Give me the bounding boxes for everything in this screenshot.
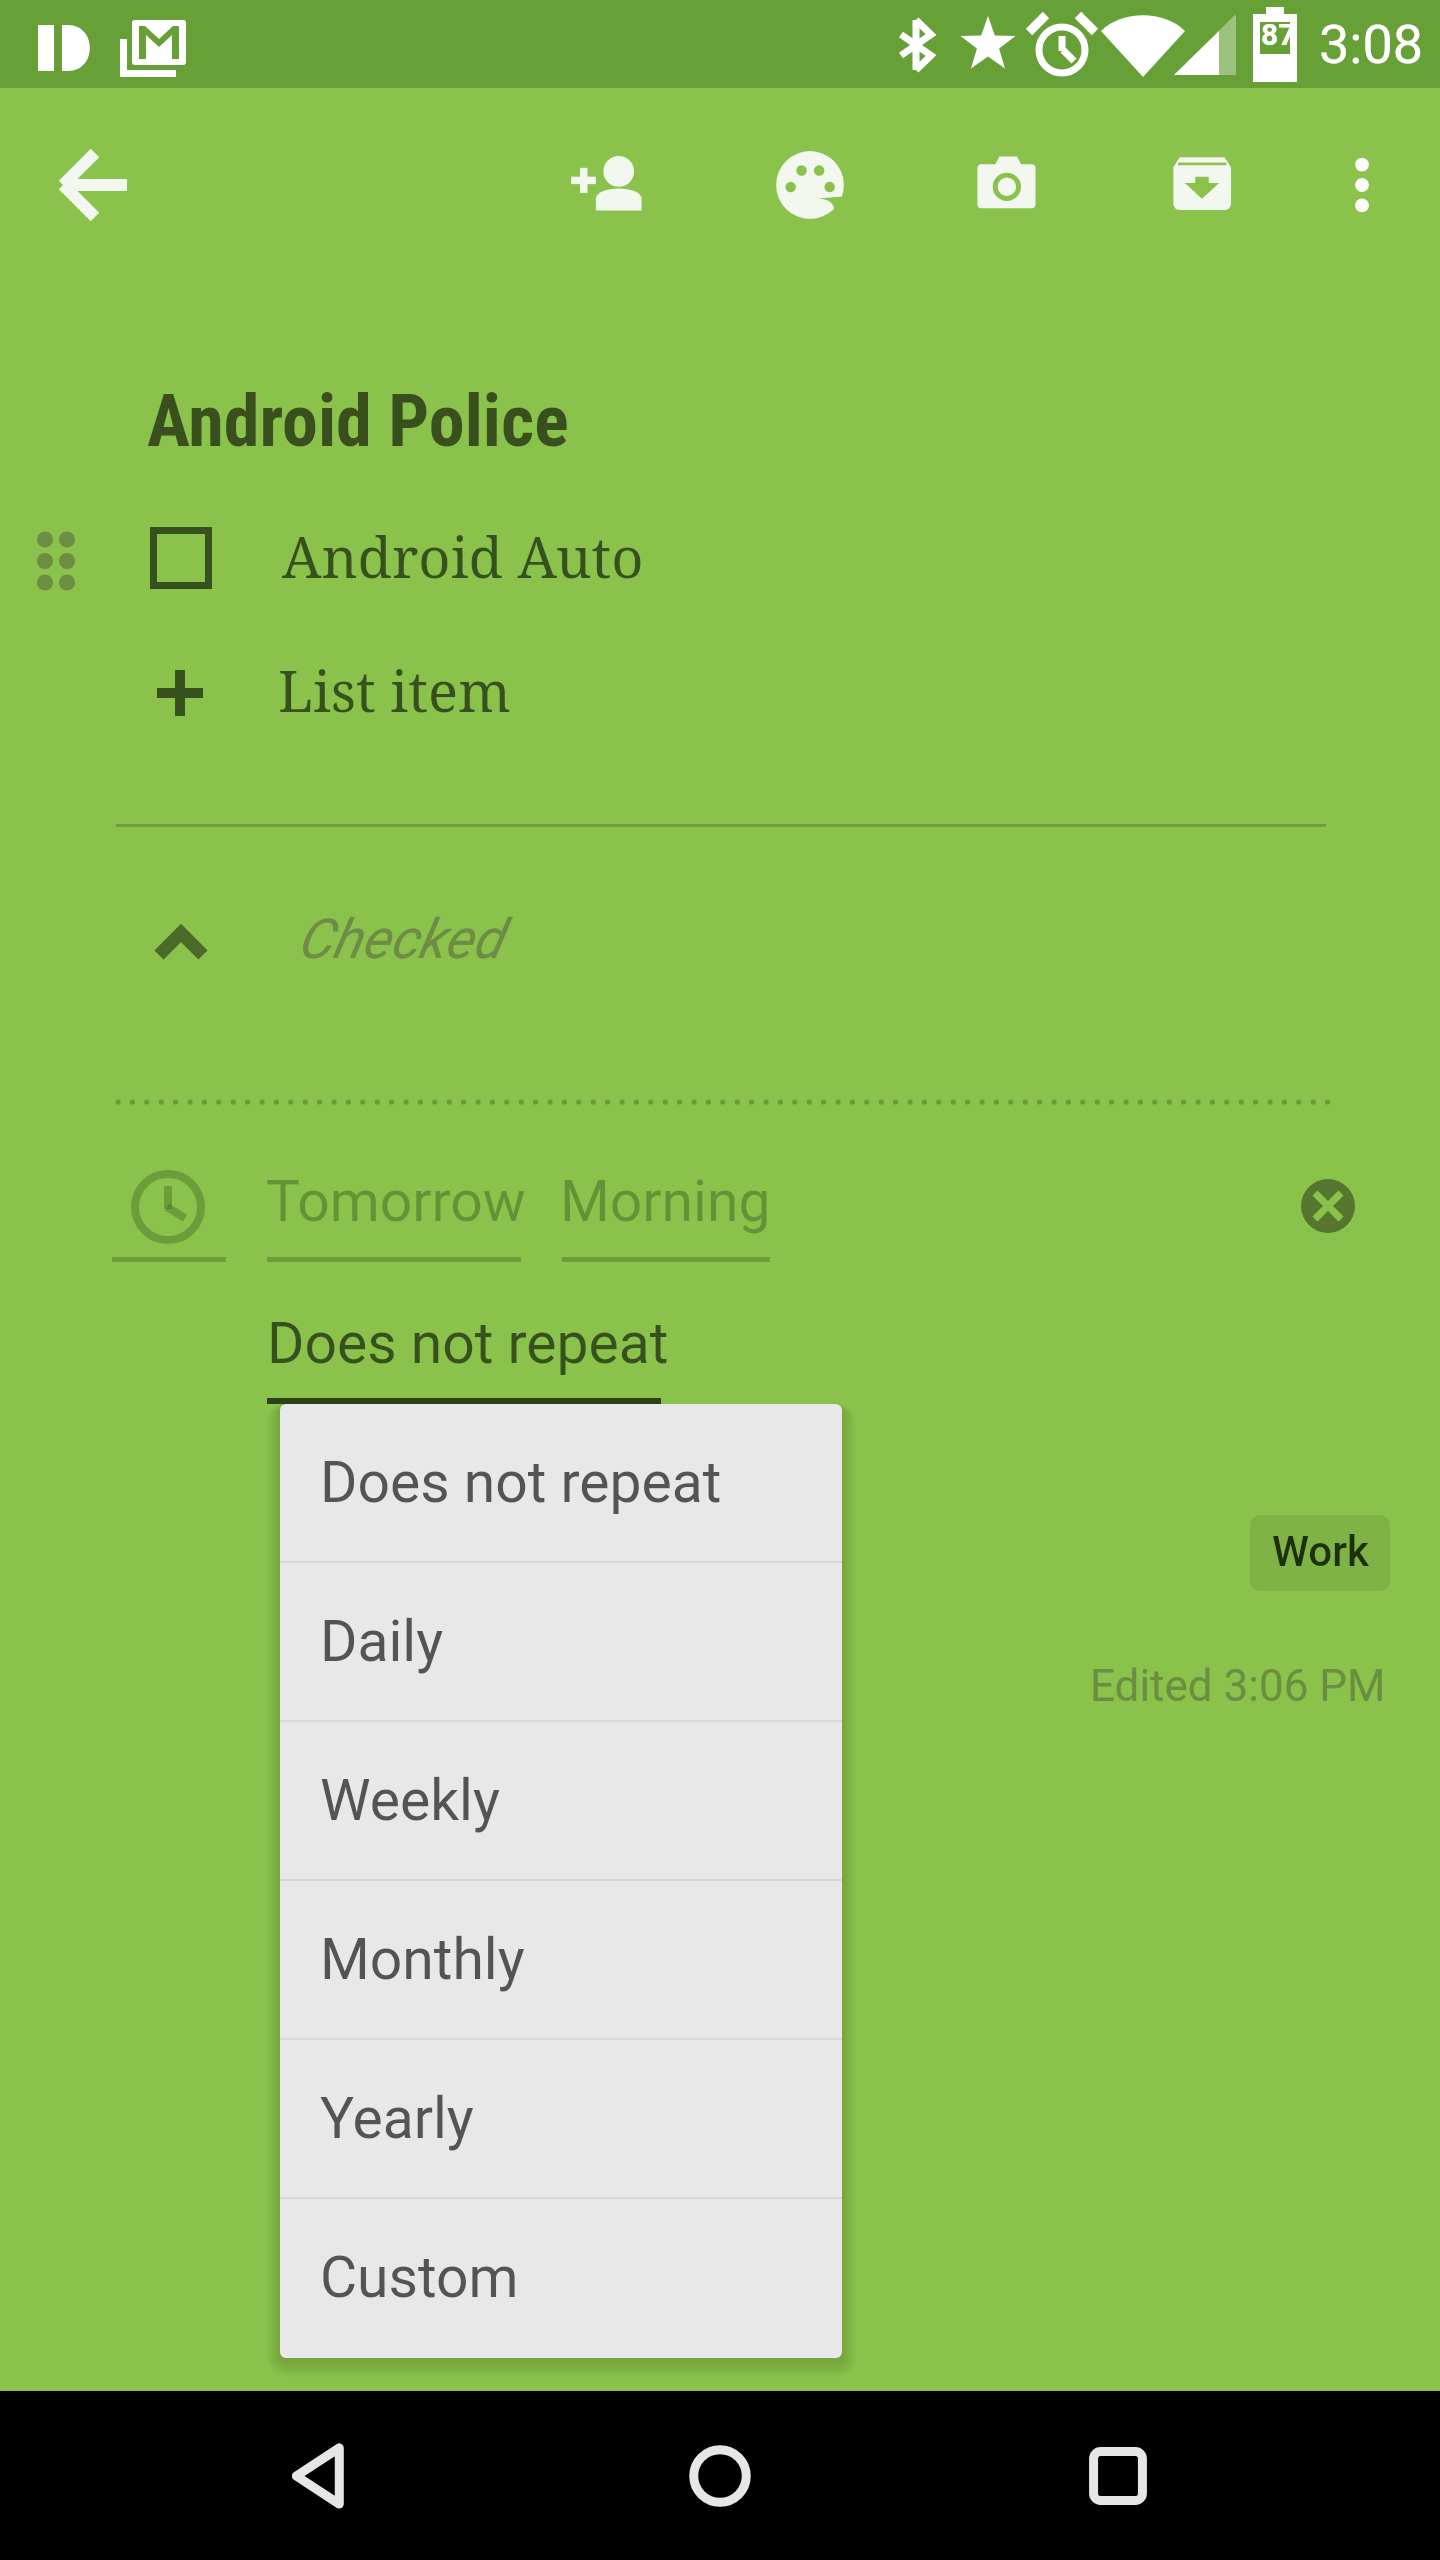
staticText: Monthly bbox=[320, 1926, 525, 1993]
button[interactable]: Back bbox=[41, 129, 153, 241]
staticText: Edited 3:06 PM bbox=[1090, 1660, 1386, 1712]
staticText: Morning bbox=[560, 1168, 771, 1235]
button[interactable]: Add image bbox=[950, 129, 1062, 241]
button[interactable]: Does not repeat bbox=[280, 1404, 842, 1563]
button[interactable]: Home bbox=[645, 2401, 795, 2551]
staticText: List item bbox=[278, 652, 511, 728]
staticText: Yearly bbox=[320, 2085, 474, 2152]
button[interactable]: Yearly bbox=[280, 2040, 842, 2199]
button[interactable]: Weekly bbox=[280, 1722, 842, 1881]
staticText: Weekly bbox=[320, 1767, 500, 1834]
button[interactable]: Work bbox=[1250, 1515, 1390, 1591]
button[interactable]: Android Auto bbox=[0, 496, 1440, 620]
staticText: 87 bbox=[1261, 17, 1296, 52]
button[interactable]: List item bbox=[0, 630, 1440, 754]
button[interactable]: Custom bbox=[280, 2199, 842, 2358]
button[interactable]: Does not repeat bbox=[267, 1300, 667, 1404]
button[interactable]: Morning bbox=[560, 1168, 771, 1235]
staticText: Does not repeat bbox=[267, 1310, 667, 1377]
button[interactable]: Add collaborator bbox=[557, 129, 669, 241]
button[interactable]: Back bbox=[248, 2401, 398, 2551]
staticText: Android Auto bbox=[282, 518, 644, 594]
staticText: Tomorrow bbox=[266, 1168, 526, 1235]
staticText: Does not repeat bbox=[320, 1449, 722, 1516]
staticText: Work bbox=[1272, 1527, 1369, 1576]
staticText: Android Police bbox=[147, 379, 569, 463]
staticText: Checked bbox=[297, 907, 503, 971]
button[interactable]: Remove reminder bbox=[1268, 1146, 1388, 1266]
button[interactable]: Monthly bbox=[280, 1881, 842, 2040]
button[interactable]: Change color bbox=[754, 129, 866, 241]
button[interactable]: Daily bbox=[280, 1563, 842, 1722]
staticText: Custom bbox=[320, 2244, 519, 2311]
button[interactable]: Archive bbox=[1146, 129, 1258, 241]
button[interactable]: Recent apps bbox=[1043, 2401, 1193, 2551]
staticText: 3:08 bbox=[1319, 13, 1424, 76]
button[interactable]: More options bbox=[1306, 129, 1418, 241]
button[interactable]: Tomorrow bbox=[266, 1168, 526, 1235]
button[interactable]: Checked bbox=[0, 876, 1440, 1008]
staticText: Daily bbox=[320, 1608, 444, 1675]
